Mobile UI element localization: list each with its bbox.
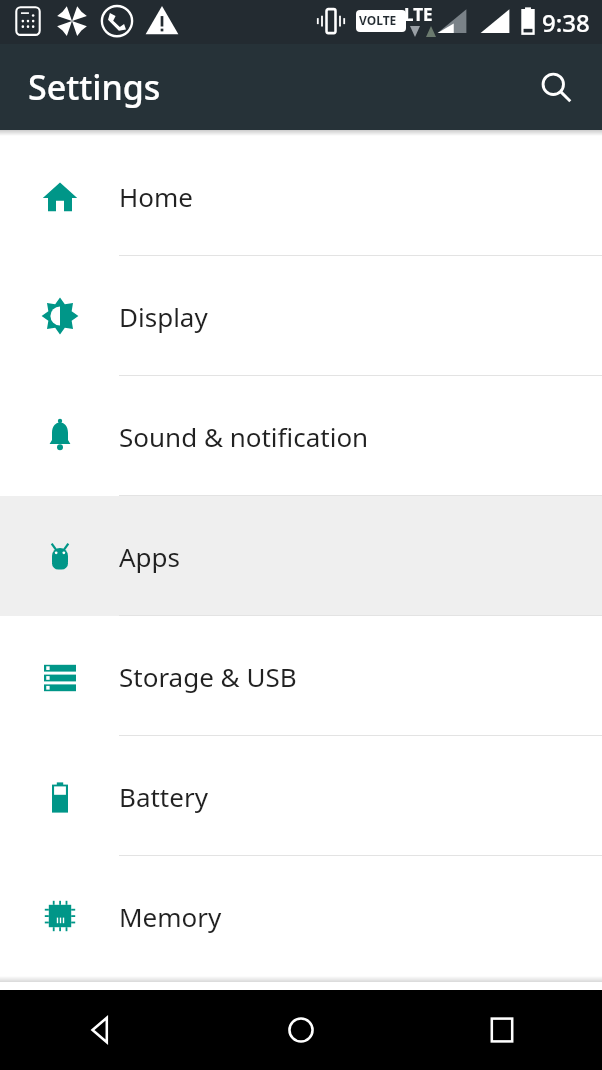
staticText: Home	[119, 179, 193, 214]
staticText: Storage & USB	[119, 659, 297, 694]
button[interactable]: Home	[0, 136, 602, 256]
staticText: Sound & notification	[119, 419, 369, 454]
staticText: Memory	[119, 899, 222, 934]
staticText: Battery	[119, 779, 208, 814]
staticText: 9:38	[542, 6, 590, 39]
button[interactable]: Sound & notification	[0, 376, 602, 496]
button[interactable]: Home	[200, 990, 401, 1070]
button[interactable]: Storage & USB	[0, 616, 602, 736]
button[interactable]: Recents	[401, 990, 602, 1070]
staticText: LTE	[404, 3, 433, 26]
staticText: VOLTE	[359, 12, 397, 28]
staticText: Apps	[119, 539, 181, 574]
button[interactable]: Back	[0, 990, 200, 1070]
button[interactable]: Battery	[0, 736, 602, 856]
button[interactable]: Display	[0, 256, 602, 376]
staticText: Settings	[28, 64, 161, 110]
button[interactable]: Apps	[0, 496, 602, 616]
button[interactable]: Search	[528, 59, 584, 115]
button[interactable]: Memory	[0, 856, 602, 976]
staticText: Display	[119, 299, 208, 334]
